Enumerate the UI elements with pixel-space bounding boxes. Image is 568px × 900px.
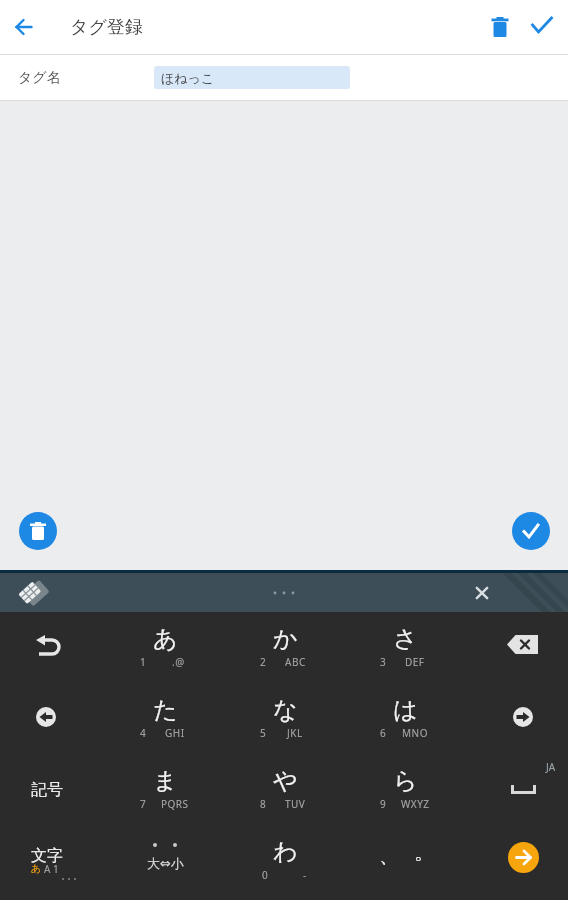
button[interactable]: 記号: [0, 754, 105, 825]
staticText: DEF: [405, 655, 425, 669]
staticText: あ: [31, 862, 42, 875]
staticText: GHI: [165, 726, 185, 740]
staticText: WXYZ: [401, 797, 430, 811]
staticText: は: [393, 695, 418, 725]
staticText: -: [303, 868, 307, 882]
staticText: 8: [260, 797, 266, 811]
button[interactable]: か: [225, 612, 345, 683]
button[interactable]: [0, 683, 105, 754]
button[interactable]: [262, 578, 306, 608]
staticText: .@: [172, 655, 185, 669]
staticText: 5: [260, 726, 266, 740]
button[interactable]: 文字: [0, 825, 105, 896]
staticText: 2: [260, 655, 266, 669]
staticText: タグ登録: [70, 16, 143, 39]
staticText: A 1: [44, 862, 59, 876]
button[interactable]: [512, 512, 550, 550]
staticText: わ: [273, 837, 298, 867]
staticText: さ: [393, 624, 418, 654]
staticText: 3: [380, 655, 386, 669]
button[interactable]: [19, 512, 57, 550]
staticText: 0: [262, 868, 268, 882]
button[interactable]: [465, 612, 568, 683]
button[interactable]: [483, 10, 517, 44]
staticText: 9: [380, 797, 386, 811]
button[interactable]: [465, 683, 568, 754]
button[interactable]: [466, 577, 498, 609]
staticText: 7: [140, 797, 146, 811]
button[interactable]: [465, 825, 568, 896]
button[interactable]: ら: [345, 754, 465, 825]
staticText: 1: [140, 655, 146, 669]
staticText: JA: [546, 760, 556, 774]
staticText: 4: [140, 726, 146, 740]
staticText: か: [273, 624, 298, 654]
button[interactable]: な: [225, 683, 345, 754]
button[interactable]: 、: [345, 825, 465, 896]
staticText: JKL: [287, 726, 303, 740]
button[interactable]: は: [345, 683, 465, 754]
staticText: タグ名: [18, 69, 61, 87]
staticText: な: [273, 695, 298, 725]
button[interactable]: [0, 612, 105, 683]
button[interactable]: [524, 9, 560, 45]
staticText: た: [153, 695, 178, 725]
button[interactable]: JA: [465, 754, 568, 825]
staticText: 文字: [31, 846, 63, 866]
button[interactable]: [16, 575, 52, 611]
staticText: 、: [379, 843, 399, 868]
button[interactable]: あ: [105, 612, 225, 683]
button[interactable]: た: [105, 683, 225, 754]
staticText: ま: [153, 766, 178, 796]
button[interactable]: さ: [345, 612, 465, 683]
staticText: ほねっこ: [161, 70, 215, 86]
staticText: あ: [153, 624, 178, 654]
staticText: TUV: [285, 797, 306, 811]
staticText: 6: [380, 726, 386, 740]
staticText: MNO: [402, 726, 428, 740]
staticText: 。: [414, 840, 434, 865]
staticText: ら: [393, 766, 418, 796]
button[interactable]: や: [225, 754, 345, 825]
staticText: PQRS: [161, 797, 189, 811]
staticText: 記号: [31, 780, 63, 800]
button[interactable]: ほねっこ: [154, 66, 350, 89]
button[interactable]: ま: [105, 754, 225, 825]
staticText: ABC: [285, 655, 306, 669]
button[interactable]: [8, 11, 40, 43]
staticText: 大⇔小: [147, 855, 184, 871]
staticText: や: [273, 766, 298, 796]
button[interactable]: 大⇔小: [105, 825, 225, 896]
button[interactable]: わ: [225, 825, 345, 896]
